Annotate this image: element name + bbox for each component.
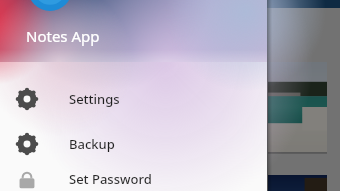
- staticText: Settings: [69, 90, 120, 108]
- other: Set Password: [15, 167, 39, 191]
- staticText: Notes App: [26, 26, 100, 46]
- button[interactable]: Settings: [0, 76, 267, 121]
- button[interactable]: Set Password: [0, 166, 267, 191]
- button[interactable]: [268, 62, 327, 152]
- button[interactable]: [0, 0, 340, 191]
- staticText: Backup: [69, 135, 115, 153]
- staticText: Set Password: [69, 170, 152, 188]
- other: Backup: [15, 132, 39, 156]
- other: Settings: [15, 87, 39, 111]
- button[interactable]: Backup: [0, 121, 267, 166]
- button[interactable]: [268, 175, 327, 191]
- button[interactable]: Notes App: [0, 0, 267, 62]
